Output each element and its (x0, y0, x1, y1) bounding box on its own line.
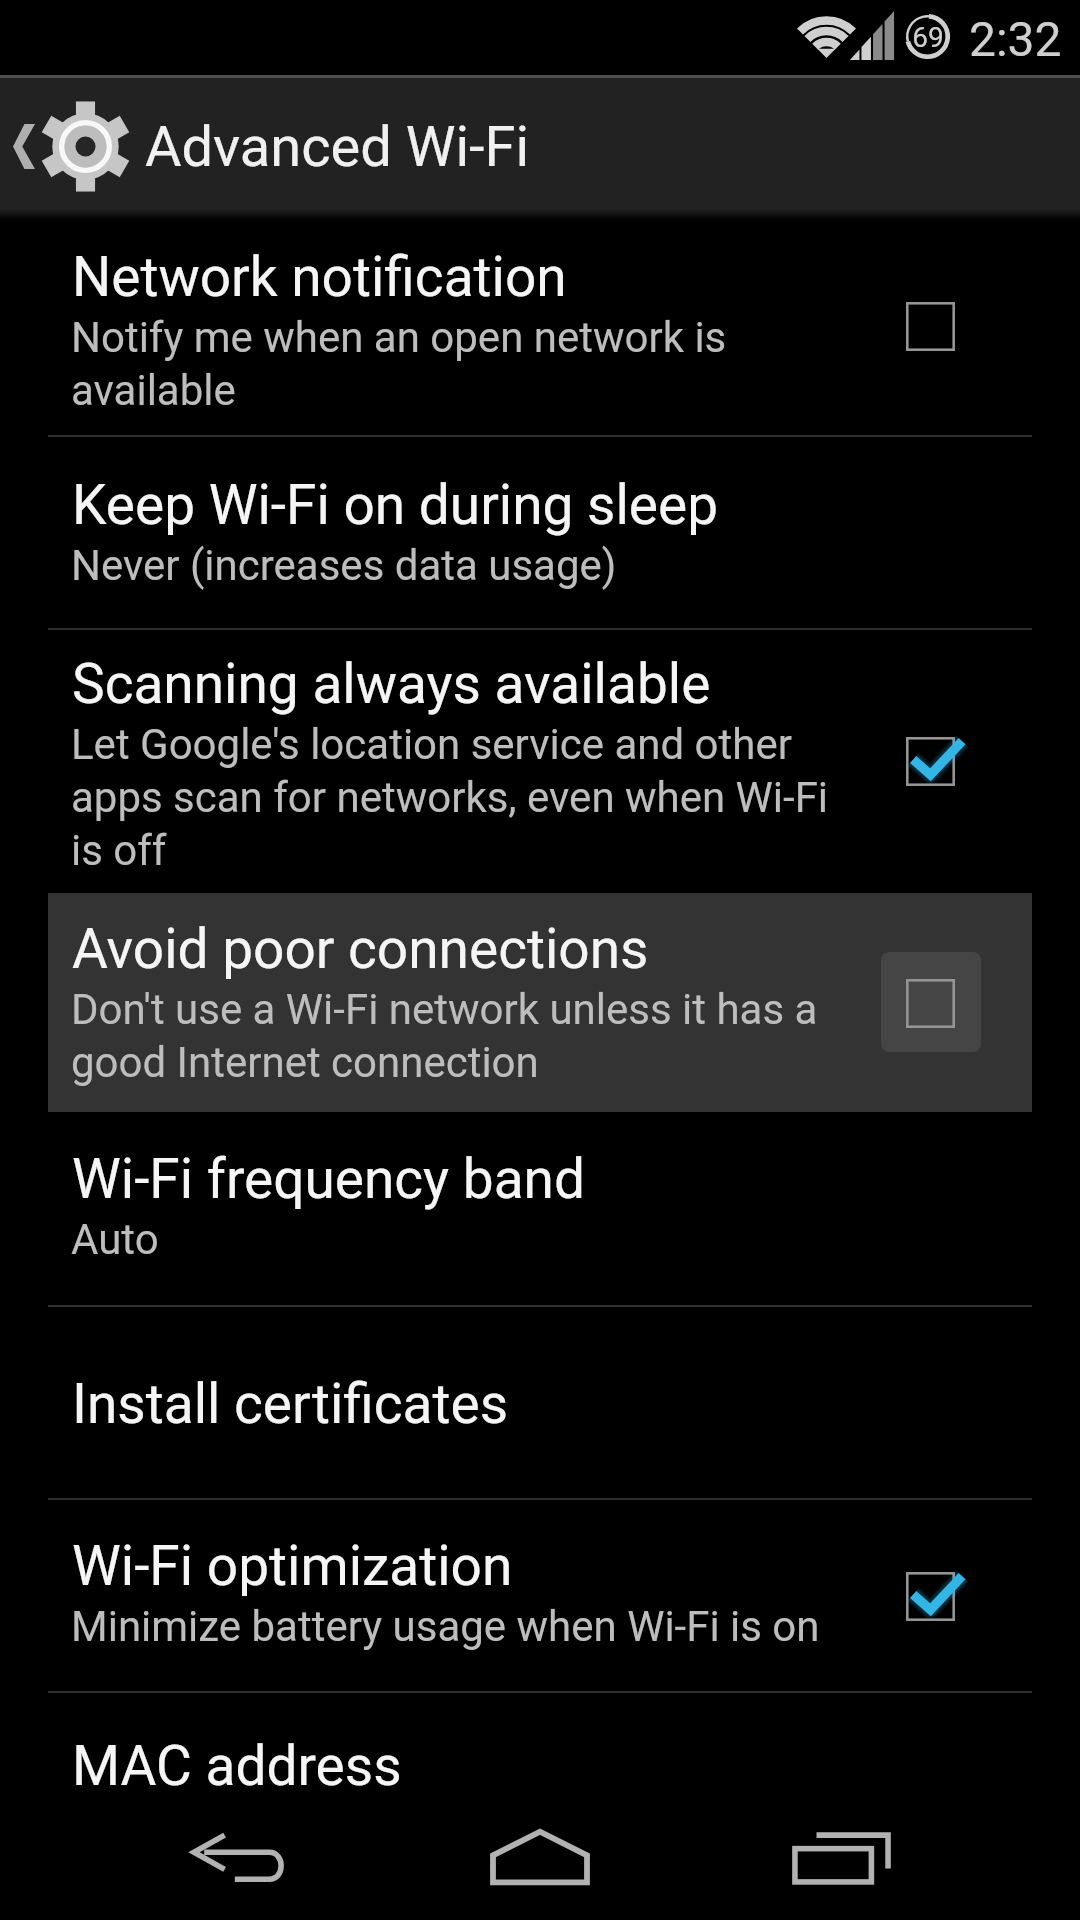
staticText: Wi-Fi frequency band (72, 1147, 585, 1211)
button[interactable]: Navigate up (0, 78, 150, 209)
staticText: Install certificates (72, 1372, 509, 1436)
button[interactable]: Home (430, 1790, 650, 1920)
staticText: Let Google's location service and other (71, 720, 792, 769)
button[interactable]: Back (130, 1790, 350, 1920)
staticText: Advanced Wi-Fi (145, 114, 530, 180)
staticText: 2:32 (969, 11, 1062, 63)
button[interactable] (0, 1691, 1080, 1790)
button[interactable] (0, 220, 1080, 435)
staticText: Network notification (72, 245, 567, 309)
button[interactable] (0, 1498, 1080, 1691)
staticText: 69 (912, 21, 944, 53)
button[interactable]: Unchecked (906, 302, 955, 351)
staticText: Notify me when an open network is (71, 313, 727, 362)
staticText: Never (increases data usage) (71, 541, 617, 590)
button[interactable] (0, 435, 1080, 628)
button[interactable]: Checked (906, 737, 955, 786)
staticText: MAC address (72, 1734, 402, 1798)
button[interactable] (0, 893, 1080, 1112)
staticText: Wi-Fi optimization (72, 1534, 513, 1598)
staticText: available (71, 366, 236, 415)
staticText: is off (71, 826, 167, 875)
staticText: Keep Wi-Fi on during sleep (72, 473, 719, 537)
staticText: Avoid poor connections (72, 917, 649, 981)
staticText: Don't use a Wi-Fi network unless it has … (71, 985, 818, 1034)
button[interactable]: Recent apps (730, 1790, 950, 1920)
button[interactable] (0, 1305, 1080, 1498)
staticText: Minimize battery usage when Wi-Fi is on (71, 1602, 820, 1651)
button[interactable] (0, 1112, 1080, 1305)
button[interactable]: Checked (906, 1572, 955, 1621)
button[interactable]: Unchecked (906, 979, 955, 1028)
button[interactable] (48, 893, 1032, 1112)
staticText: good Internet connection (71, 1038, 539, 1087)
staticText: apps scan for networks, even when Wi-Fi (71, 773, 829, 822)
staticText: Scanning always available (72, 652, 711, 716)
button[interactable] (0, 628, 1080, 893)
staticText: Auto (71, 1215, 159, 1264)
